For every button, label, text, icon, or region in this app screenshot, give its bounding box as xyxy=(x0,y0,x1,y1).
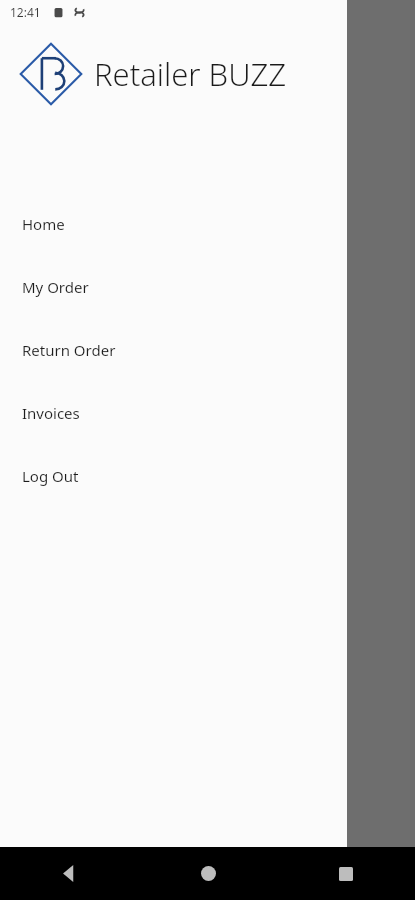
staticText: Log Out xyxy=(22,466,79,486)
button[interactable]: Log Out xyxy=(0,444,347,507)
staticText: 12:41 xyxy=(10,4,41,20)
button[interactable] xyxy=(14,355,401,460)
staticText: Return Order xyxy=(22,340,116,360)
button[interactable]: Retailer BUZZ xyxy=(0,24,347,124)
button[interactable]: Return Order xyxy=(0,318,347,381)
button[interactable]: Cart xyxy=(340,32,392,84)
button[interactable]: Home xyxy=(139,847,277,900)
staticText: My Order xyxy=(22,277,89,297)
button[interactable]: Back xyxy=(0,847,139,900)
button[interactable]: My Order xyxy=(0,255,347,318)
button[interactable] xyxy=(14,700,401,795)
button[interactable] xyxy=(0,0,415,900)
button[interactable]: Home xyxy=(0,192,347,255)
staticText: Invoices xyxy=(22,403,80,423)
button[interactable] xyxy=(14,525,401,615)
staticText: Home xyxy=(22,214,65,234)
button[interactable] xyxy=(14,168,401,275)
staticText: Retailer BUZZ xyxy=(94,53,287,95)
button[interactable]: Invoices xyxy=(0,381,347,444)
button[interactable]: Recent apps xyxy=(277,847,415,900)
